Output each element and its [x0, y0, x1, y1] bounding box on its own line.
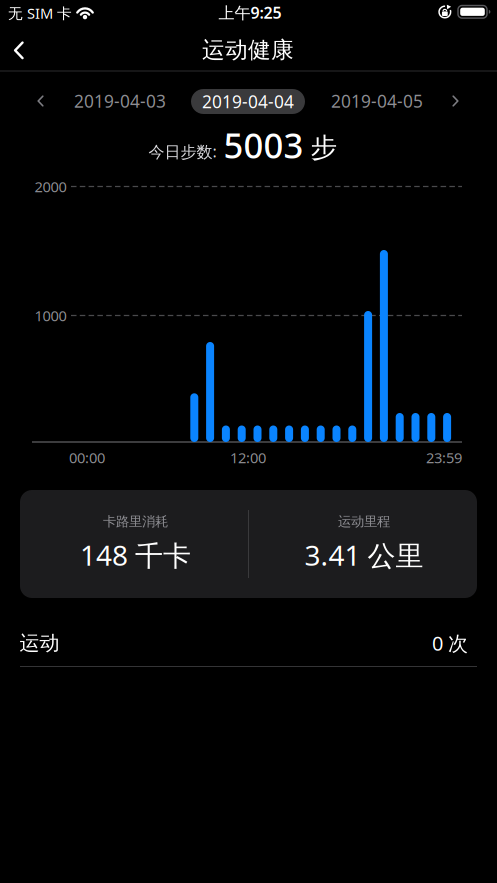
button[interactable] [36, 94, 45, 107]
staticText: 2019-04-03 [74, 89, 166, 112]
staticText: 卡路里消耗 [103, 513, 168, 530]
staticText: 运动里程 [338, 513, 390, 530]
staticText: 步 [310, 131, 337, 164]
staticText: 0 次 [432, 630, 468, 656]
staticText: 148 千卡 [80, 536, 191, 574]
staticText: 3.41 公里 [304, 536, 423, 574]
staticText: 23:59 [426, 448, 462, 467]
button[interactable]: 运动 [20, 621, 477, 665]
staticText: 2019-04-05 [331, 89, 423, 112]
button[interactable]: 2019-04-03 [74, 89, 166, 112]
staticText: 00:00 [69, 448, 105, 467]
staticText: 运动健康 [202, 36, 294, 64]
staticText: 5003 [223, 122, 303, 168]
staticText: 今日步数: [148, 141, 216, 162]
button[interactable] [451, 94, 460, 107]
button[interactable]: 2019-04-05 [331, 89, 423, 112]
staticText: 1000 [34, 306, 66, 325]
staticText: 2000 [34, 177, 66, 196]
button[interactable]: 2019-04-04 [191, 89, 305, 114]
button[interactable] [11, 40, 27, 62]
staticText: 2019-04-04 [202, 90, 294, 113]
staticText: 无 SIM 卡 [8, 3, 72, 23]
staticText: 上午9:25 [218, 2, 281, 23]
staticText: 运动 [19, 631, 59, 655]
staticText: 12:00 [230, 448, 266, 467]
